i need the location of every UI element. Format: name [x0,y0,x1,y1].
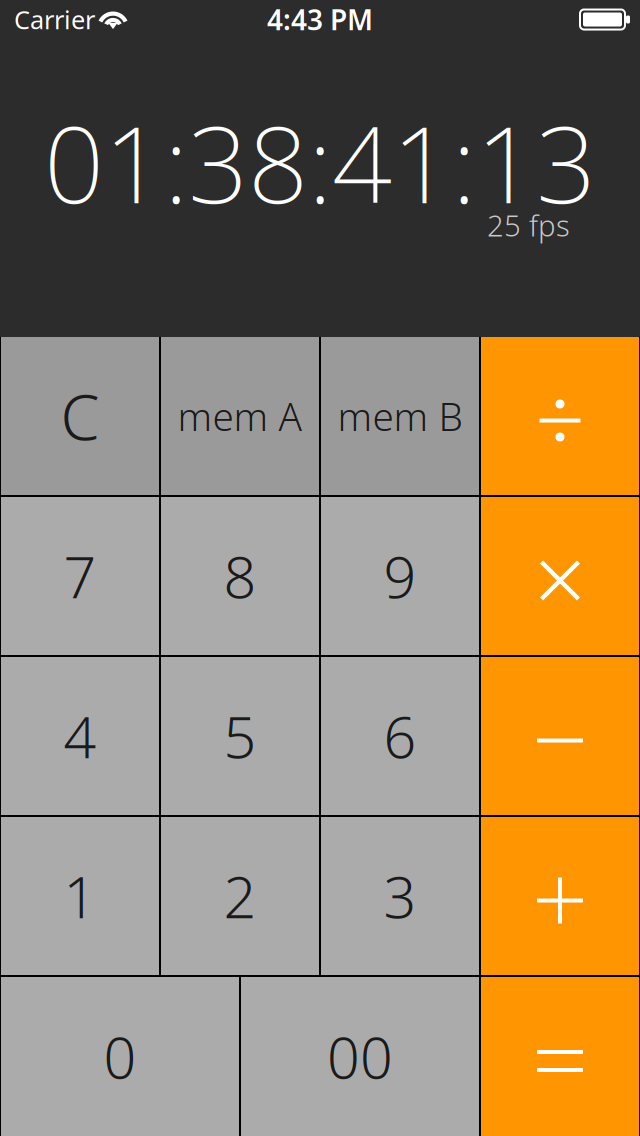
button[interactable]: Multiply [481,497,639,655]
button[interactable]: Minus [481,657,639,815]
button[interactable]: 8 [161,497,319,655]
button[interactable]: 5 [161,657,319,815]
button[interactable]: Divide [481,337,639,495]
button[interactable]: 00 [241,977,479,1136]
staticText: 25 fps [487,205,570,244]
button[interactable]: 4 [1,657,159,815]
staticText: 01:38:41:13 [44,93,596,232]
staticText: C [60,374,99,458]
button[interactable]: C [1,337,159,495]
staticText: 00 [327,1018,393,1094]
button[interactable]: Equals [481,977,639,1136]
button[interactable]: Plus [481,817,639,975]
button[interactable]: 9 [321,497,479,655]
staticText: 4 [63,698,96,774]
button[interactable]: 7 [1,497,159,655]
button[interactable]: 0 [1,977,239,1136]
staticText: 4:43 PM [267,1,373,38]
staticText: Carrier [14,3,95,36]
staticText: 3 [383,858,416,934]
staticText: 9 [383,538,416,614]
staticText: mem B [337,390,462,442]
staticText: 1 [63,858,96,934]
staticText: 0 [103,1018,136,1094]
staticText: 7 [63,538,96,614]
button[interactable]: mem B [321,337,479,495]
button[interactable]: 6 [321,657,479,815]
staticText: 8 [223,538,256,614]
button[interactable]: 1 [1,817,159,975]
button[interactable]: 2 [161,817,319,975]
staticText: mem A [177,390,302,442]
button[interactable]: mem A [161,337,319,495]
staticText: 5 [223,698,256,774]
staticText: 6 [383,698,416,774]
staticText: 2 [223,858,256,934]
button[interactable]: 3 [321,817,479,975]
